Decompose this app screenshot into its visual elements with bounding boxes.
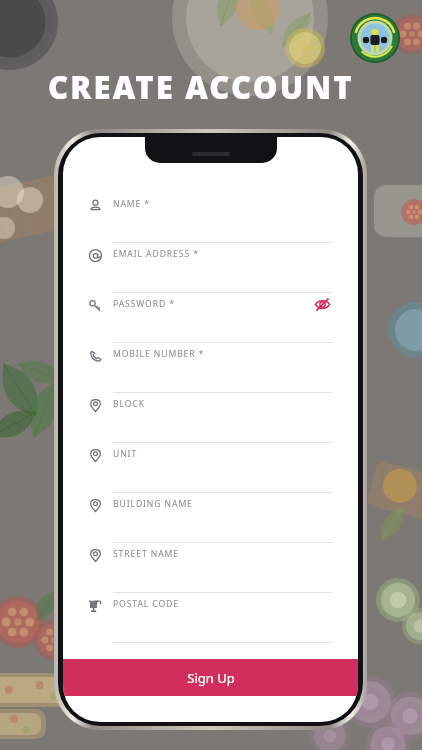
button[interactable]: Toggle password visibility	[312, 294, 332, 314]
button[interactable]: UNIT	[75, 443, 346, 493]
staticText: Sign Up	[187, 669, 235, 687]
staticText: EMAIL ADDRESS *	[113, 248, 332, 260]
staticText: MOBILE NUMBER *	[113, 348, 332, 360]
button[interactable]: BUILDING NAME	[75, 493, 346, 543]
staticText: BUILDING NAME	[113, 498, 332, 510]
staticText: PASSWORD *	[113, 298, 312, 310]
button[interactable]: POSTAL CODE	[75, 593, 346, 643]
other: Nasi Kandar Al-Jazira logo	[350, 13, 400, 63]
staticText: POSTAL CODE	[113, 598, 332, 610]
button[interactable]: STREET NAME	[75, 543, 346, 593]
staticText: STREET NAME	[113, 548, 332, 560]
staticText: CREATE ACCOUNT	[48, 66, 354, 108]
button[interactable]: BLOCK	[75, 393, 346, 443]
staticText: NAME *	[113, 198, 332, 210]
button[interactable]: Sign Up	[63, 659, 358, 696]
staticText: BLOCK	[113, 398, 332, 410]
staticText: UNIT	[113, 448, 332, 460]
button[interactable]: NAME *	[75, 193, 346, 243]
button[interactable]: MOBILE NUMBER *	[75, 343, 346, 393]
button[interactable]: PASSWORD *	[75, 293, 346, 343]
button[interactable]: EMAIL ADDRESS *	[75, 243, 346, 293]
